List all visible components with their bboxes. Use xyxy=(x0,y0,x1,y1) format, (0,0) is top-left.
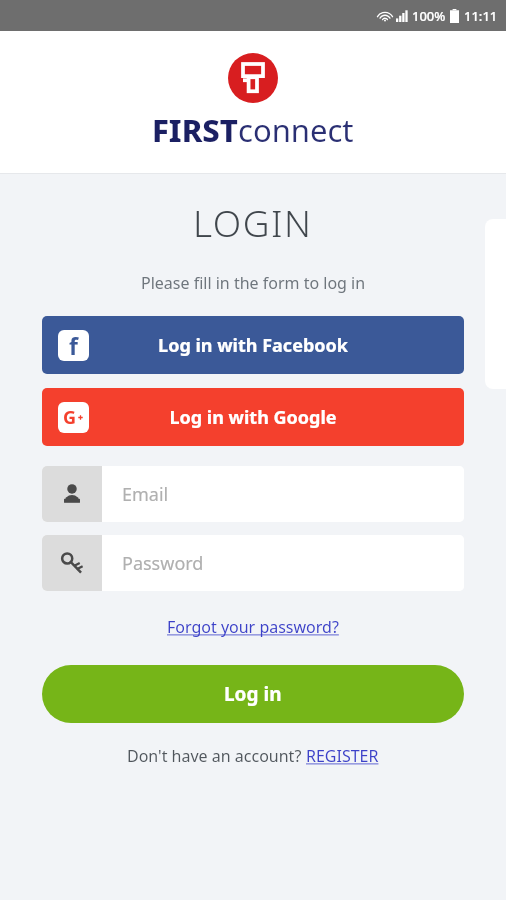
staticText: G xyxy=(63,405,77,430)
staticText: Log in with Google xyxy=(169,405,337,430)
other: Password xyxy=(60,551,84,575)
staticText: Please fill in the form to log in xyxy=(141,272,366,294)
staticText: Log in with Facebook xyxy=(158,333,348,358)
staticText: FIRST xyxy=(152,109,238,151)
staticText: Email xyxy=(122,482,169,507)
staticText: LOGIN xyxy=(193,197,313,247)
button[interactable]: Log in xyxy=(42,665,464,723)
staticText: connect xyxy=(238,109,354,151)
staticText: REGISTER xyxy=(306,745,379,767)
button[interactable]: G xyxy=(42,388,464,446)
button[interactable]: REGISTER xyxy=(306,745,379,767)
staticText: Forgot your password? xyxy=(167,616,339,638)
button[interactable]: f xyxy=(42,316,464,374)
staticText: 100% xyxy=(412,7,446,25)
button[interactable]: Forgot your password? xyxy=(161,613,345,641)
button[interactable]: Email xyxy=(42,466,464,522)
button[interactable]: Password xyxy=(42,535,464,591)
staticText: f xyxy=(69,330,78,361)
staticText: Password xyxy=(122,551,204,576)
staticText: 11:11 xyxy=(464,7,498,25)
staticText: Don't have an account? xyxy=(127,745,306,767)
other: Email xyxy=(61,483,83,505)
staticText: Log in xyxy=(224,681,282,707)
